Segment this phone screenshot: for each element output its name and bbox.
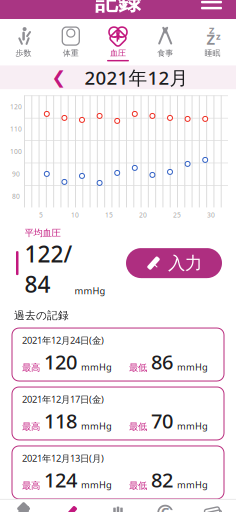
button[interactable]: メニュー bbox=[195, 0, 228, 15]
staticText: 5 bbox=[39, 210, 43, 219]
staticText: C bbox=[161, 504, 170, 512]
staticText: 睡眠 bbox=[204, 48, 220, 58]
staticText: Z bbox=[209, 24, 214, 36]
button[interactable]: クーポン bbox=[189, 500, 236, 512]
staticText: 2021年12月 bbox=[84, 65, 188, 90]
staticText: mmHg bbox=[81, 361, 112, 373]
staticText: 120 bbox=[10, 102, 22, 111]
staticText: 最低 bbox=[129, 480, 147, 491]
staticText: 10 bbox=[71, 210, 79, 219]
staticText: z bbox=[216, 30, 221, 42]
button[interactable]: 体重 bbox=[47, 22, 94, 65]
staticText: 最高 bbox=[22, 421, 40, 432]
staticText: 86 bbox=[151, 348, 173, 375]
staticText: 平均血圧 bbox=[24, 227, 60, 239]
staticText: mmHg bbox=[74, 284, 105, 297]
staticText: mmHg bbox=[81, 478, 112, 491]
staticText: 食事 bbox=[157, 48, 173, 58]
button[interactable]: C bbox=[142, 500, 189, 512]
staticText: 2021年12月13日(月) bbox=[22, 452, 104, 464]
staticText: 2021年12月24日(金) bbox=[22, 334, 104, 346]
staticText: ❮ bbox=[51, 68, 66, 87]
staticText: 124 bbox=[44, 466, 77, 493]
staticText: mmHg bbox=[81, 420, 112, 432]
staticText: 体重 bbox=[63, 48, 79, 58]
staticText: 歩数 bbox=[16, 48, 32, 58]
button[interactable]: 血圧 bbox=[94, 22, 142, 65]
staticText: 最低 bbox=[129, 362, 147, 373]
staticText: 82 bbox=[151, 466, 173, 493]
staticText: 過去の記録 bbox=[14, 309, 69, 322]
staticText: 80 bbox=[12, 192, 20, 201]
button[interactable]: 記録 bbox=[47, 500, 94, 512]
staticText: mmHg bbox=[177, 361, 208, 373]
staticText: 最高 bbox=[22, 480, 40, 491]
button[interactable]: ランキング bbox=[94, 500, 142, 512]
staticText: 2021年12月17日(金) bbox=[22, 393, 104, 405]
button[interactable]: 2021年12月17日(金) bbox=[12, 387, 224, 440]
staticText: 110 bbox=[10, 125, 22, 133]
staticText: 70 bbox=[151, 407, 173, 434]
staticText: 30 bbox=[207, 210, 215, 219]
staticText: 最低 bbox=[129, 421, 147, 432]
staticText: 最高 bbox=[22, 362, 40, 373]
staticText: 118 bbox=[44, 407, 77, 434]
staticText: mmHg bbox=[177, 420, 208, 432]
staticText: 20 bbox=[139, 210, 147, 219]
staticText: 122/84 bbox=[24, 239, 72, 299]
button[interactable]: 前の月 bbox=[47, 66, 70, 89]
staticText: mmHg bbox=[177, 478, 208, 491]
button[interactable]: 2021年12月24日(金) bbox=[12, 328, 224, 381]
button[interactable]: 食事 bbox=[142, 22, 189, 65]
button[interactable]: Z bbox=[189, 22, 236, 65]
button[interactable]: 歩数 bbox=[0, 22, 47, 65]
staticText: 100 bbox=[10, 147, 22, 156]
button[interactable]: 入力 bbox=[126, 248, 222, 278]
staticText: 記録 bbox=[95, 0, 141, 16]
staticText: 15 bbox=[105, 210, 113, 219]
button[interactable]: 2021年12月13日(月) bbox=[12, 446, 224, 499]
staticText: 25 bbox=[173, 210, 181, 219]
staticText: 90 bbox=[12, 169, 20, 178]
button[interactable]: ホーム bbox=[0, 500, 47, 512]
staticText: 120 bbox=[44, 348, 77, 375]
staticText: 血圧 bbox=[110, 48, 126, 58]
staticText: 入力 bbox=[168, 252, 202, 274]
staticText: Z bbox=[206, 29, 214, 49]
